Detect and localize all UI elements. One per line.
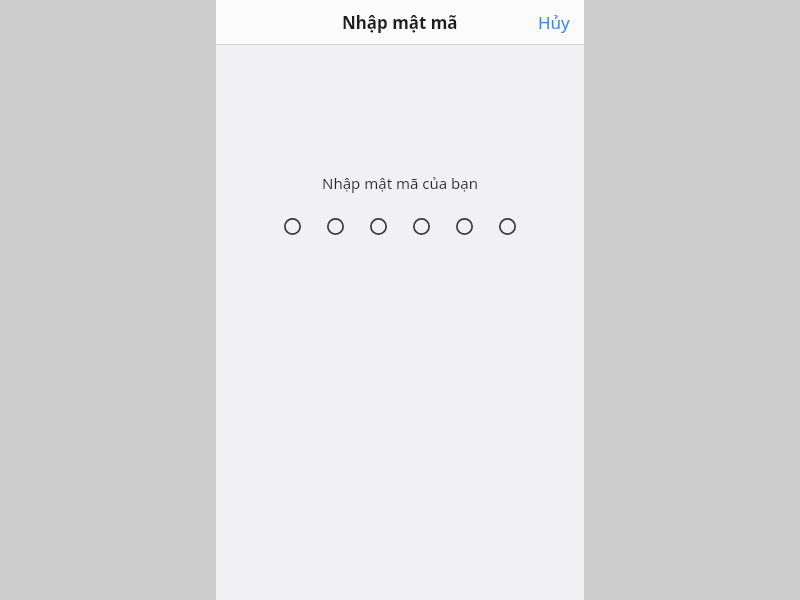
staticText: Hủy [538,11,570,34]
other: Passcode digit [284,218,301,235]
other: Passcode digit [327,218,344,235]
staticText: Nhập mật mã [342,11,458,34]
other: Passcode digit [370,218,387,235]
staticText: Nhập mật mã của bạn [216,173,584,193]
other: Passcode digit [499,218,516,235]
button[interactable]: Hủy [524,1,584,44]
other: Passcode digit [456,218,473,235]
other: Passcode digit [413,218,430,235]
